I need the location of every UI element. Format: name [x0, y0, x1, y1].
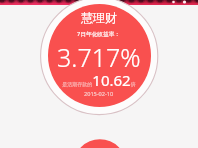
- staticText: 慧理财: [81, 10, 117, 25]
- staticText: 3.717%: [57, 40, 141, 74]
- other: More: [0, 0, 198, 148]
- staticText: 是活期存款的10.62倍: [62, 70, 136, 90]
- button[interactable]: [48, 4, 151, 107]
- staticText: 7日年化收益率：: [77, 30, 121, 38]
- staticText: 2015-02-10: [84, 90, 114, 98]
